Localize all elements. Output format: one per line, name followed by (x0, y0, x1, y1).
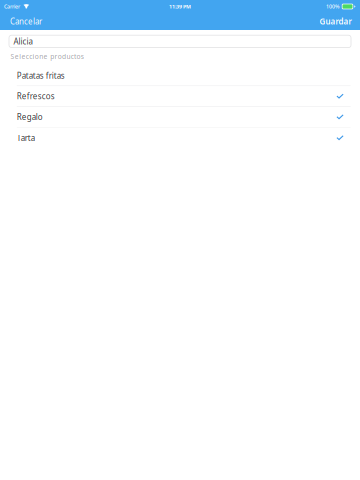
button[interactable]: Refrescos (0, 86, 360, 107)
staticText: Guardar (319, 16, 351, 27)
button[interactable]: Regalo (0, 107, 360, 128)
button[interactable]: Tarta (0, 128, 360, 148)
staticText: Seleccione productos (10, 52, 84, 61)
button[interactable]: Patatas fritas (0, 65, 360, 86)
button[interactable]: Cancelar (0, 13, 50, 30)
staticText: Patatas fritas (17, 70, 65, 81)
staticText: Refrescos (17, 91, 55, 101)
staticText: Alicia (14, 36, 33, 47)
staticText: Tarta (17, 132, 35, 143)
staticText: 100% (326, 3, 340, 10)
staticText: 11:39 PM (169, 3, 191, 10)
staticText: Carrier (4, 3, 20, 10)
staticText: Regalo (17, 112, 43, 122)
staticText: Cancelar (10, 16, 42, 27)
button[interactable]: Guardar (311, 13, 360, 30)
